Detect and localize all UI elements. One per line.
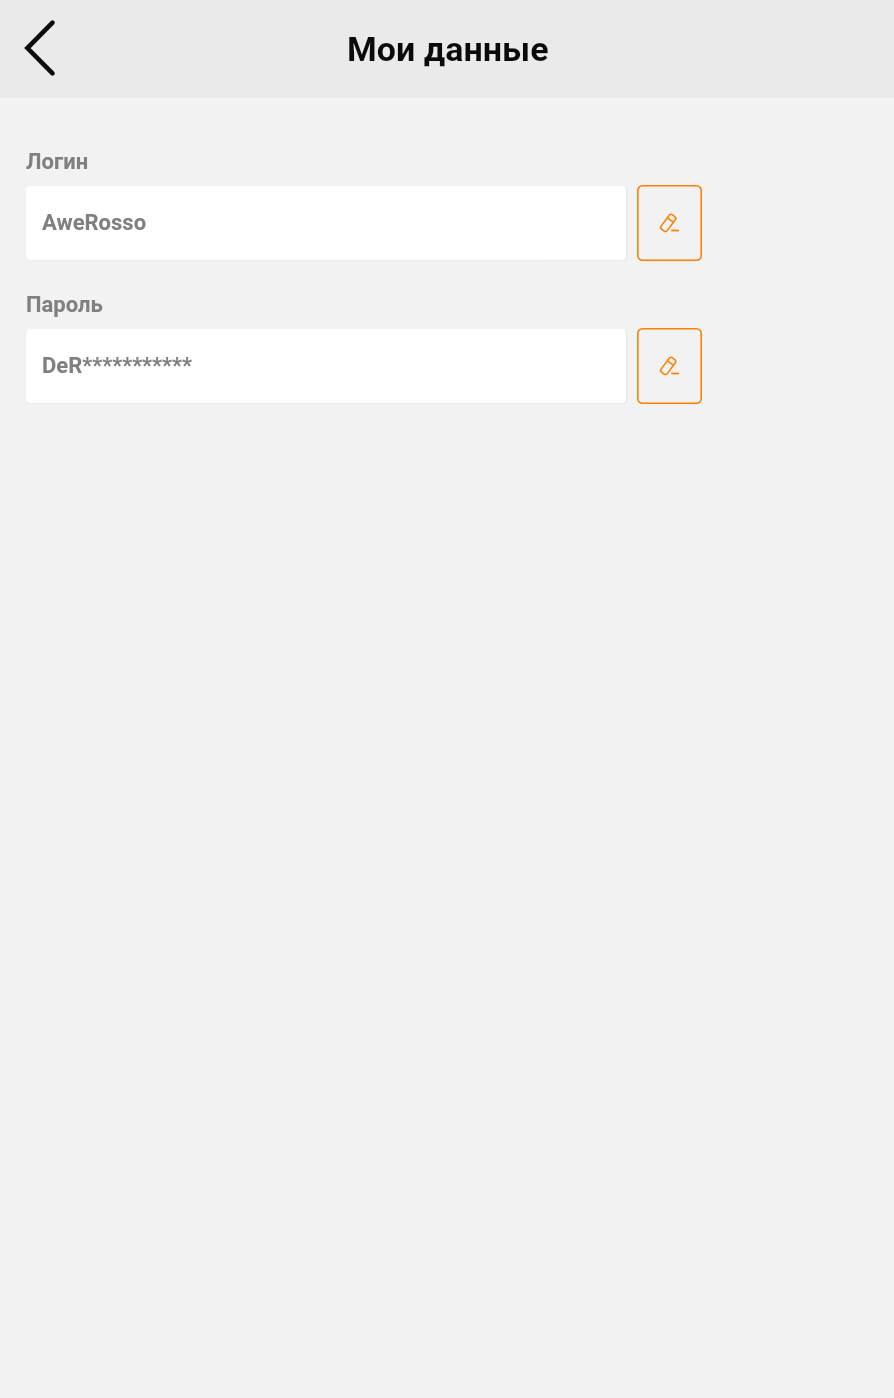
staticText: AweRosso [42, 210, 147, 236]
button[interactable]: Back [0, 0, 78, 98]
button[interactable]: AweRosso [26, 186, 626, 260]
button[interactable]: Edit [637, 328, 702, 404]
staticText: Логин [26, 149, 89, 175]
button[interactable]: Edit [637, 185, 702, 261]
staticText: DeR*********** [42, 353, 193, 379]
staticText: Пароль [26, 292, 103, 318]
button[interactable]: DeR*********** [26, 329, 626, 403]
staticText: Мои данные [347, 29, 549, 69]
